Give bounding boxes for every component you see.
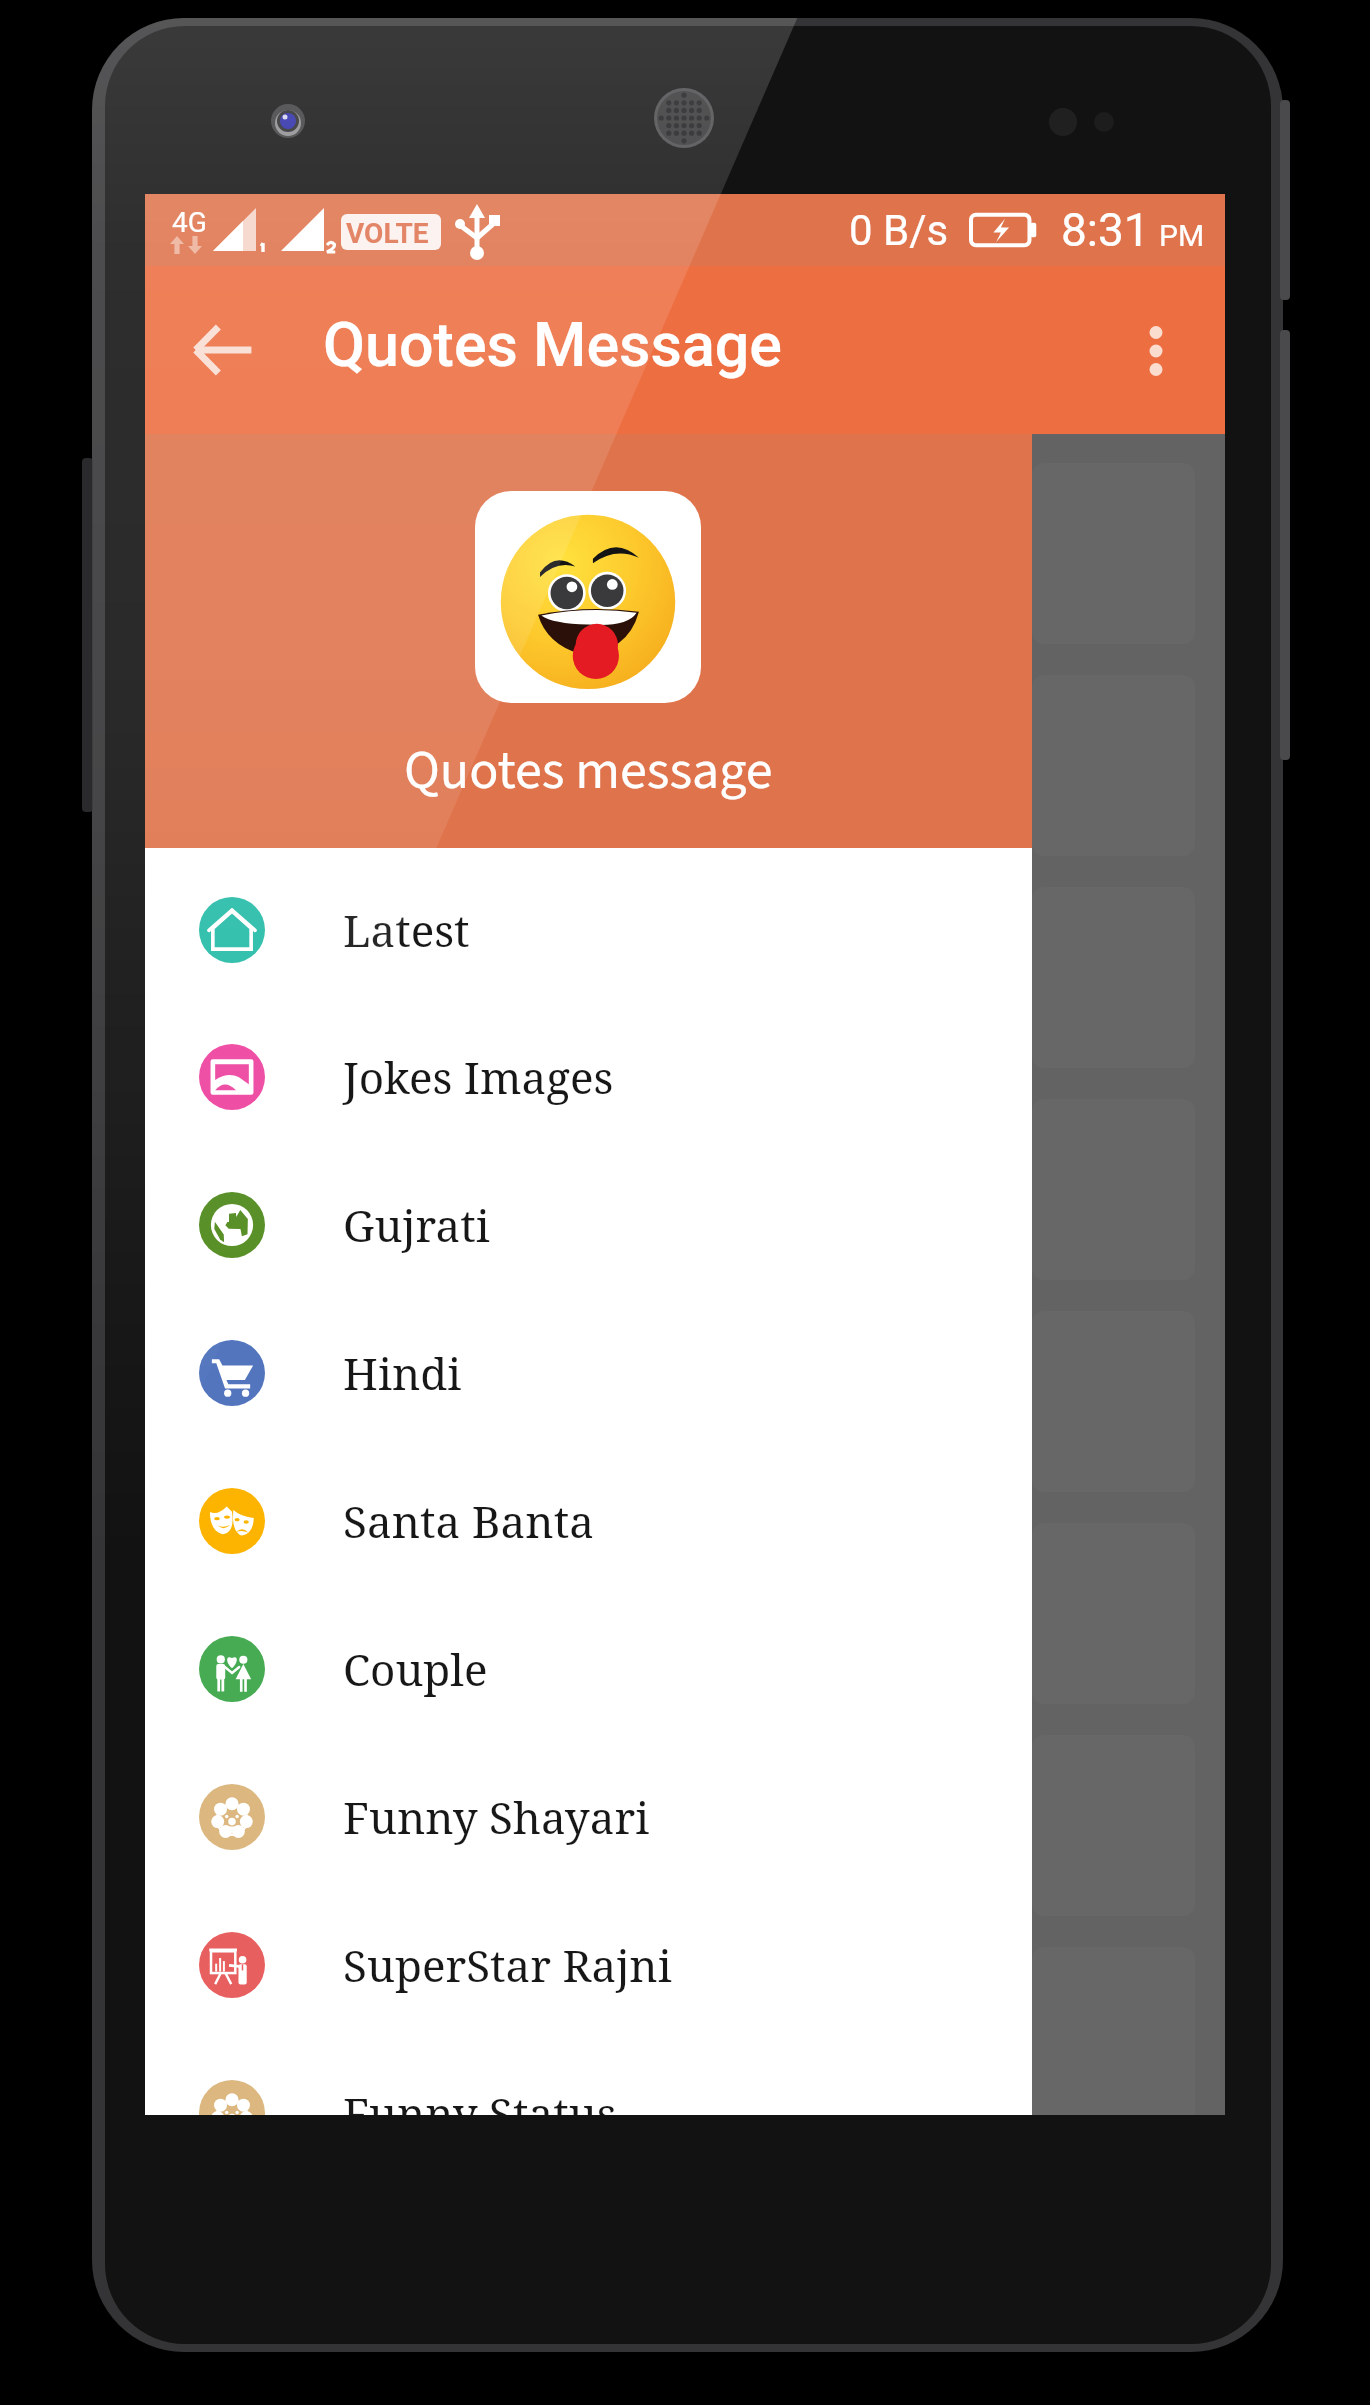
button[interactable]: Santa Banta [145, 1447, 1032, 1595]
staticText: 4G [172, 206, 207, 239]
staticText: PM [1159, 218, 1205, 253]
staticText: SuperStar Rajni [343, 1935, 672, 1995]
staticText: Funny Status [343, 2083, 617, 2115]
staticText: Latest [343, 900, 470, 960]
button[interactable]: Quotes Message [323, 309, 783, 380]
button[interactable]: Latest [145, 856, 1032, 1004]
button[interactable]: SuperStar Rajni [145, 1891, 1032, 2039]
button[interactable]: Funny Shayari [145, 1743, 1032, 1891]
staticText: Couple [343, 1639, 488, 1699]
staticText: Jokes Images [343, 1047, 614, 1107]
button[interactable]: Funny Status [145, 2039, 1032, 2115]
staticText: 8:31 [1061, 203, 1150, 257]
button[interactable]: Couple [145, 1595, 1032, 1743]
button[interactable]: Back [157, 284, 289, 416]
staticText: Funny Shayari [343, 1787, 650, 1847]
staticText: Santa Banta [343, 1491, 594, 1551]
staticText: VOLTE [346, 217, 429, 250]
staticText: Hindi [343, 1343, 462, 1403]
button[interactable]: More options [1113, 308, 1199, 394]
staticText: Quotes message [404, 733, 773, 810]
staticText: Gujrati [343, 1195, 490, 1255]
button[interactable]: Gujrati [145, 1151, 1032, 1299]
button[interactable]: Hindi [145, 1299, 1032, 1447]
staticText: Quotes Message [323, 309, 783, 380]
button[interactable]: Jokes Images [145, 1003, 1032, 1151]
staticText: 0 B/s [849, 206, 949, 255]
